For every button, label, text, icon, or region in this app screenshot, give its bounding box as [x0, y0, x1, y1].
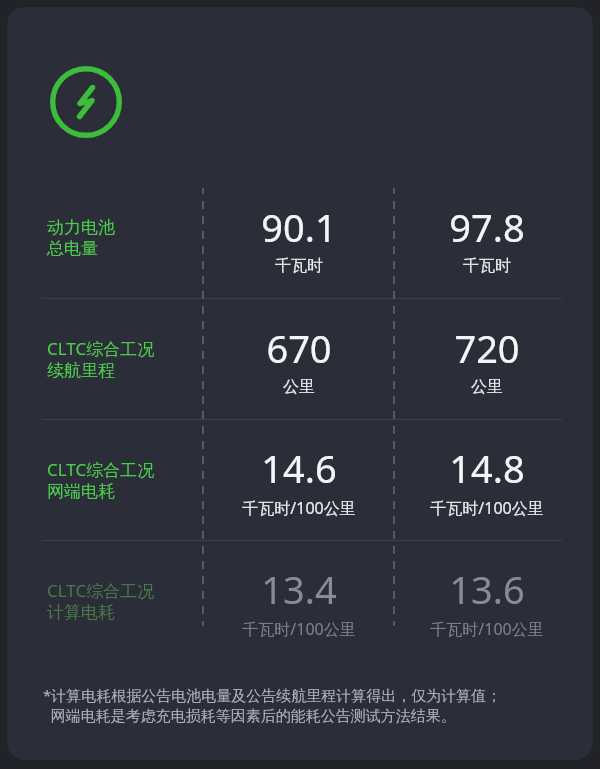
staticText: 公里 [283, 377, 315, 397]
button[interactable]: CLTC综合工况 [7, 541, 593, 661]
staticText: 千瓦时/100公里 [430, 618, 544, 640]
staticText: 13.4 [261, 563, 337, 615]
button[interactable]: CLTC综合工况 [7, 299, 593, 419]
staticText: 千瓦时 [275, 256, 323, 276]
staticText: 720 [454, 322, 520, 374]
staticText: 动力电池 [47, 217, 115, 238]
staticText: 续航里程 [47, 360, 115, 381]
staticText: CLTC综合工况 [47, 337, 155, 360]
staticText: 千瓦时/100公里 [242, 497, 356, 519]
staticText: 总电量 [47, 238, 98, 259]
staticText: 97.8 [449, 201, 525, 253]
staticText: 计算电耗 [47, 602, 115, 623]
staticText: 网端电耗是考虑充电损耗等因素后的能耗公告测试方法结果。 [43, 705, 456, 725]
staticText: CLTC综合工况 [47, 579, 155, 602]
button[interactable]: CLTC综合工况 [7, 420, 593, 540]
staticText: CLTC综合工况 [47, 458, 155, 481]
staticText: 千瓦时/100公里 [430, 497, 544, 519]
staticText: 90.1 [261, 201, 337, 253]
staticText: 网端电耗 [47, 481, 115, 502]
staticText: 千瓦时/100公里 [242, 618, 356, 640]
staticText: 公里 [471, 377, 503, 397]
staticText: 13.6 [449, 563, 525, 615]
button[interactable]: Charging [50, 66, 122, 138]
staticText: *计算电耗根据公告电池电量及公告续航里程计算得出，仅为计算值； [43, 685, 502, 705]
staticText: 千瓦时 [463, 256, 511, 276]
staticText: 14.8 [449, 442, 525, 494]
staticText: 14.6 [261, 442, 337, 494]
staticText: 670 [266, 322, 332, 374]
button[interactable]: 动力电池 [7, 178, 593, 298]
